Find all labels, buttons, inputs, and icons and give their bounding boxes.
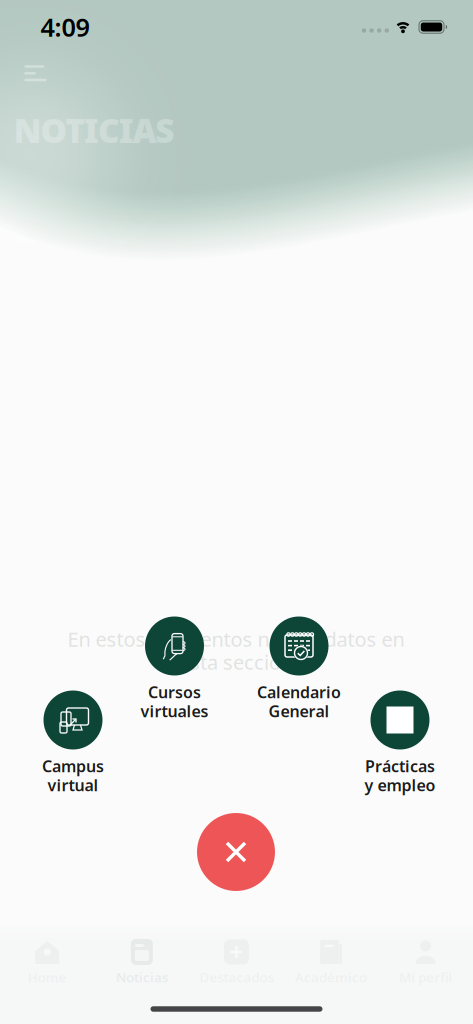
staticText: NOTICIAS	[14, 108, 174, 152]
button[interactable]: Noticias	[95, 927, 189, 997]
staticText: virtual	[47, 774, 98, 796]
staticText: y empleo	[364, 774, 435, 796]
button[interactable]: Menú	[13, 53, 57, 93]
staticText: virtuales	[140, 700, 208, 722]
button[interactable]: Calendario	[243, 616, 355, 726]
staticText: Cursos	[148, 681, 201, 703]
staticText: esta sección	[179, 649, 293, 675]
staticText: Calendario	[257, 681, 341, 703]
staticText: Noticias	[116, 968, 168, 986]
staticText: General	[268, 700, 329, 722]
button[interactable]: Cursos	[118, 616, 230, 726]
staticText: 4:09	[40, 10, 89, 44]
staticText: Campus	[42, 755, 104, 777]
staticText: En estos momentos no hay datos en	[67, 626, 404, 652]
staticText: Prácticas	[365, 755, 435, 777]
button[interactable]: Cerrar	[197, 813, 275, 891]
button[interactable]: Campus	[17, 690, 129, 800]
button[interactable]: Prácticas	[344, 690, 456, 800]
